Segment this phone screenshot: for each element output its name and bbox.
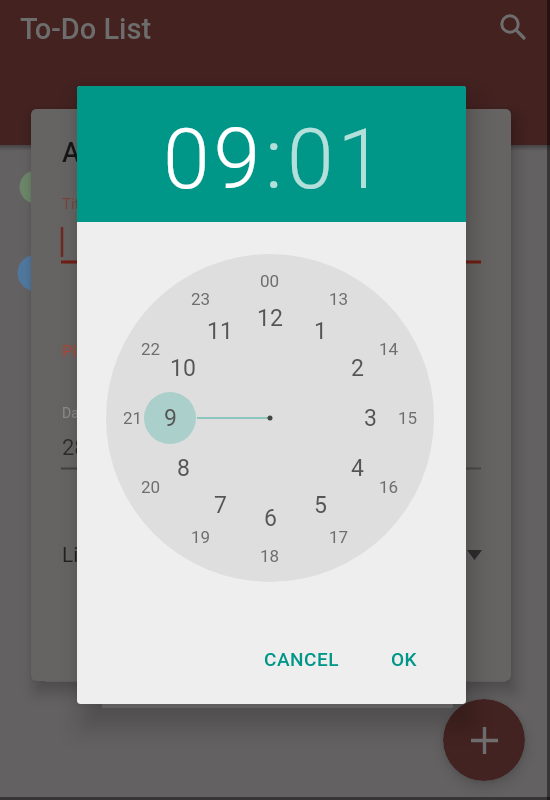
staticText: 23 (191, 289, 211, 309)
button[interactable]: OK (369, 637, 439, 681)
staticText: 11 (207, 318, 233, 345)
staticText: 5 (314, 492, 327, 519)
staticText: 10 (170, 355, 196, 382)
staticText: 28/11/2018 (62, 435, 180, 461)
staticText: Title (62, 195, 92, 213)
staticText: 2 (351, 355, 364, 382)
staticText: To-Do List (20, 12, 152, 46)
button[interactable]: 01 (287, 110, 389, 208)
staticText: 1 (314, 318, 327, 345)
button[interactable] (497, 10, 527, 40)
button[interactable] (443, 699, 525, 781)
staticText: 9 (164, 405, 177, 432)
staticText: CANCEL (264, 648, 339, 670)
staticText: OK (391, 648, 418, 670)
staticText: : (265, 110, 287, 208)
staticText: 18 (260, 546, 280, 566)
button[interactable]: 09 (163, 110, 265, 208)
staticText: 17 (329, 527, 349, 547)
staticText: 6 (264, 505, 277, 532)
staticText: 4 (351, 455, 364, 482)
staticText: 22 (141, 339, 161, 359)
staticText: 13 (329, 289, 349, 309)
staticText: 19 (191, 527, 211, 547)
staticText: 7 (214, 492, 227, 519)
staticText: Planned (62, 342, 121, 361)
staticText: 20 (141, 477, 161, 497)
staticText: Date (62, 405, 91, 421)
staticText: 00 (260, 271, 280, 291)
staticText: 14 (379, 339, 399, 359)
staticText: Add Task (62, 137, 174, 169)
button[interactable]: CANCEL (243, 637, 359, 681)
staticText: List (62, 543, 97, 568)
staticText: 21 (123, 408, 143, 428)
staticText: 12 (257, 305, 283, 332)
staticText: 3 (364, 405, 377, 432)
staticText: 16 (379, 477, 399, 497)
staticText: 15 (398, 408, 418, 428)
staticText: 8 (177, 455, 190, 482)
